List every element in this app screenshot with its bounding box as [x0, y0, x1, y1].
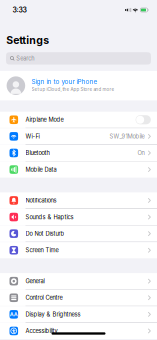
button[interactable]: Airplane Mode — [0, 112, 157, 128]
staticText: Sounds & Haptics — [25, 214, 73, 220]
staticText: Sign in to your iPhone — [32, 78, 98, 85]
staticText: On — [137, 149, 144, 156]
button[interactable]: Search — [6, 52, 151, 65]
staticText: Control Centre — [25, 294, 62, 301]
staticText: Bluetooth — [25, 149, 49, 156]
button[interactable]: Mobile Data — [0, 161, 157, 178]
staticText: Set up iCloud, the App Store and more — [32, 87, 115, 92]
staticText: Notifications — [25, 197, 56, 204]
staticText: Accessibility — [25, 327, 57, 334]
staticText: Screen Time — [25, 247, 58, 254]
staticText: Settings — [6, 34, 49, 46]
button[interactable]: Notifications — [0, 192, 157, 208]
staticText: AA — [10, 311, 18, 318]
staticText: Display & Brightness — [25, 311, 80, 318]
staticText: General — [25, 278, 44, 285]
staticText: Wi-Fi — [25, 133, 39, 140]
staticText: Search — [16, 55, 34, 62]
button[interactable]: Bluetooth — [0, 145, 157, 161]
staticText: 3:33 — [12, 6, 26, 14]
staticText: Airplane Mode — [25, 116, 63, 123]
button[interactable]: AA — [0, 306, 157, 322]
staticText: SW_91Mobile — [109, 133, 144, 140]
staticText: Mobile Data — [25, 166, 56, 173]
button[interactable]: Control Centre — [0, 290, 157, 306]
button[interactable]: Do Not Disturb — [0, 226, 157, 242]
button[interactable]: Accessibility — [0, 323, 157, 339]
button[interactable]: Wi-Fi — [0, 128, 157, 144]
button[interactable]: Sign in to your iPhone — [0, 71, 157, 100]
staticText: Do Not Disturb — [25, 230, 64, 237]
button[interactable]: General — [0, 273, 157, 289]
button[interactable]: Screen Time — [0, 242, 157, 258]
button[interactable]: Sounds & Haptics — [0, 209, 157, 225]
